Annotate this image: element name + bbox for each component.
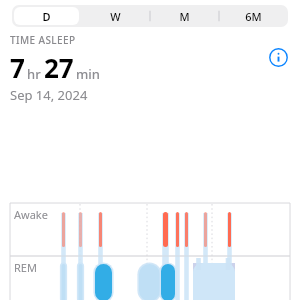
button[interactable]: W xyxy=(83,7,148,25)
staticText: 7 xyxy=(10,50,25,85)
button[interactable]: D xyxy=(14,7,79,25)
staticText: hr xyxy=(27,65,41,83)
staticText: M xyxy=(179,9,190,24)
button[interactable]: 6M xyxy=(221,7,286,25)
staticText: min xyxy=(76,65,100,83)
button[interactable]: M xyxy=(152,7,217,25)
staticText: Awake xyxy=(14,207,48,222)
staticText: 6M xyxy=(245,9,262,24)
button[interactable]: Information about time asleep xyxy=(266,45,290,69)
staticText: 27 xyxy=(44,50,74,85)
staticText: Sep 14, 2024 xyxy=(10,86,88,104)
staticText: TIME ASLEEP xyxy=(10,33,76,47)
staticText: D xyxy=(42,9,51,24)
staticText: W xyxy=(110,9,121,24)
staticText: REM xyxy=(14,260,37,275)
